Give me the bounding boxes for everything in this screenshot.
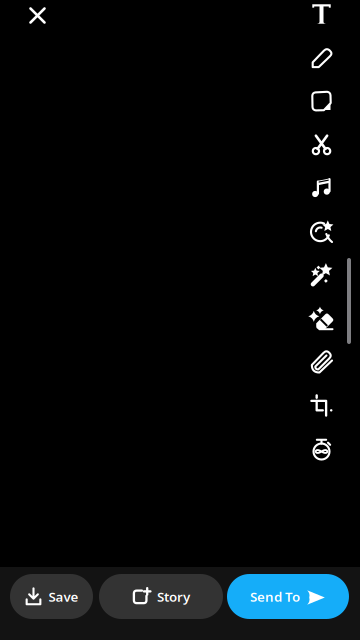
button[interactable]: Music — [299, 166, 343, 210]
button[interactable]: Magic Eraser — [299, 297, 343, 340]
button[interactable]: Send To — [227, 574, 349, 619]
button[interactable]: Story — [99, 574, 223, 619]
button[interactable]: Crop — [299, 384, 343, 427]
button[interactable]: Draw — [299, 36, 343, 79]
staticText: Story — [157, 588, 190, 605]
button[interactable]: Scissors — [299, 123, 343, 166]
button[interactable]: Timer — [299, 427, 343, 471]
button[interactable]: Text — [299, 0, 343, 36]
button[interactable]: Close — [15, 0, 59, 37]
button[interactable]: Magic — [299, 253, 343, 297]
staticText: Send To — [250, 588, 300, 605]
button[interactable]: Save — [10, 574, 93, 619]
staticText: Save — [48, 588, 78, 605]
button[interactable]: Stickers — [299, 79, 343, 123]
button[interactable]: Lenses — [299, 210, 343, 253]
button[interactable]: Attach Link — [299, 340, 343, 384]
